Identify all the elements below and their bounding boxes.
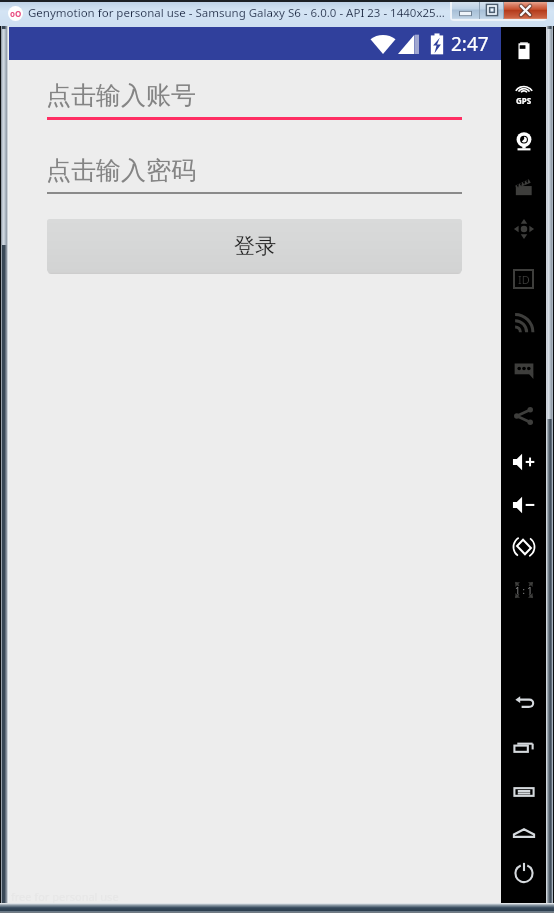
button[interactable]: Volume down — [501, 482, 546, 527]
button[interactable]: Minimize — [452, 1, 479, 19]
staticText: 登录 — [234, 233, 276, 259]
staticText: 2:47 — [451, 31, 489, 57]
staticText: ID — [518, 272, 530, 287]
staticText: Genymotion for personal use - Samsung Ga… — [28, 5, 445, 21]
staticText: 1 : 1 — [515, 584, 533, 596]
button[interactable]: 点击输入账号 — [46, 75, 463, 115]
button[interactable]: Close — [504, 1, 547, 19]
button[interactable]: Network — [501, 301, 546, 346]
button[interactable]: Rotate — [501, 524, 546, 569]
button[interactable]: SMS — [501, 346, 546, 391]
button[interactable]: Move — [501, 206, 546, 251]
button[interactable]: 登录 — [47, 219, 462, 272]
button[interactable]: GPS — [501, 73, 546, 118]
button[interactable]: Maximize — [480, 1, 503, 19]
button[interactable]: Scale 1:1 — [501, 567, 546, 612]
staticText: free for personal use — [11, 889, 119, 904]
button[interactable]: 点击输入密码 — [46, 150, 463, 190]
button[interactable]: Power — [501, 849, 546, 894]
button[interactable]: Recents — [501, 725, 546, 770]
button[interactable]: Home — [501, 811, 546, 856]
button[interactable]: Back — [501, 680, 546, 725]
staticText: 点击输入账号 — [46, 80, 196, 111]
button[interactable]: Camera — [501, 119, 546, 164]
button[interactable]: Battery — [501, 28, 546, 73]
button[interactable]: Menu — [501, 769, 546, 814]
staticText: GPS — [516, 95, 532, 106]
button[interactable]: Screen recorder — [501, 164, 546, 209]
staticText: oO — [10, 8, 22, 19]
button[interactable]: Share — [501, 393, 546, 438]
button[interactable]: Identifiers — [501, 256, 546, 301]
staticText: 点击输入密码 — [46, 155, 196, 186]
button[interactable]: Volume up — [501, 439, 546, 484]
